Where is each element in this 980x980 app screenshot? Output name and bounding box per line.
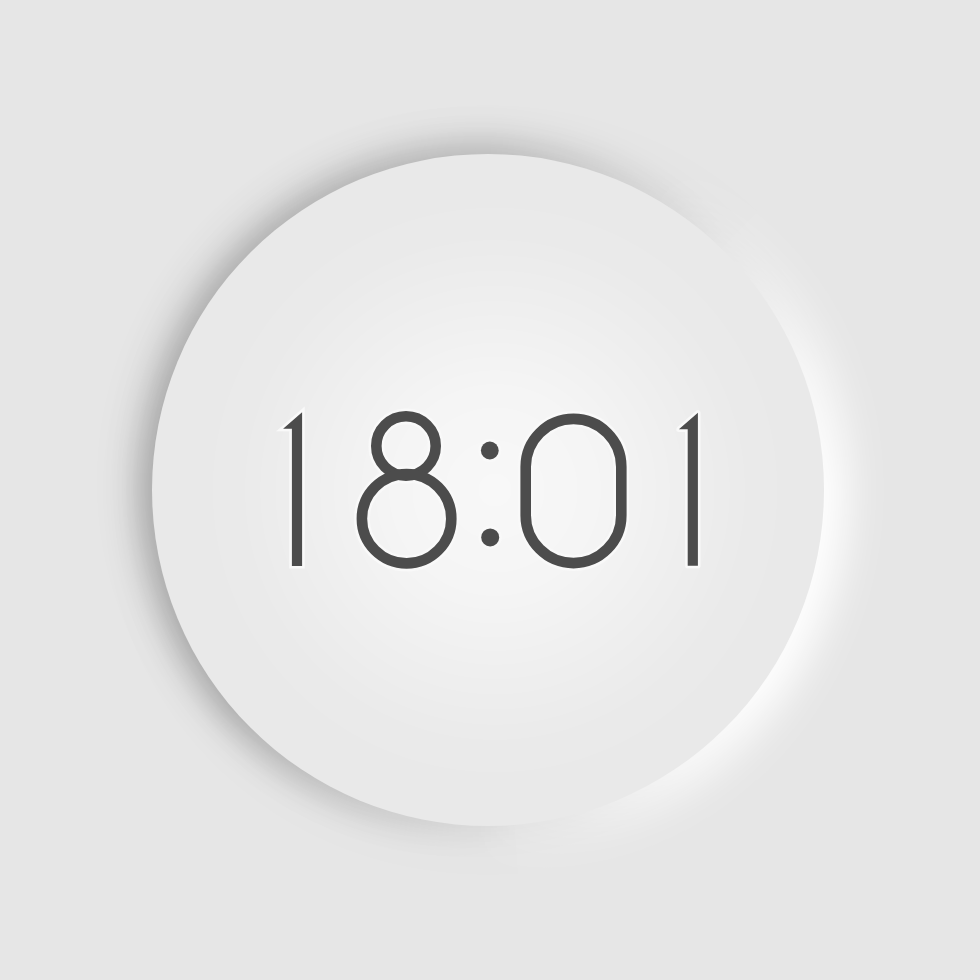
button[interactable]: Watch face showing 18:01 bbox=[0, 0, 980, 980]
